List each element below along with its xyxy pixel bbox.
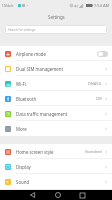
- button[interactable]: Display: [0, 159, 112, 174]
- button[interactable]: Search for settings: [5, 25, 107, 34]
- staticText: 7:54 AM: [94, 3, 110, 8]
- staticText: T-Mobile: [2, 4, 14, 8]
- button[interactable]: Home screen style: [0, 144, 112, 159]
- button[interactable]: Bluetooth: [0, 91, 112, 106]
- staticText: Bluetooth: [16, 96, 37, 102]
- button[interactable]: Home: [45, 190, 70, 200]
- button[interactable]: Airplane mode switch: [97, 51, 108, 57]
- staticText: Standard: [85, 149, 102, 154]
- button[interactable]: Sound: [0, 174, 112, 189]
- staticText: Wi-Fi: [16, 81, 26, 87]
- button[interactable]: Back: [20, 190, 45, 200]
- staticText: Off: [96, 96, 102, 101]
- staticText: Home screen style: [16, 149, 54, 155]
- staticText: More: [16, 126, 27, 132]
- staticText: Sound: [16, 179, 30, 185]
- button[interactable]: Dual SIM management: [0, 61, 112, 76]
- button[interactable]: Recent apps: [70, 190, 95, 200]
- button[interactable]: More: [0, 121, 112, 136]
- staticText: Dual SIM management: [16, 66, 63, 72]
- staticText: Airplane mode: [16, 51, 46, 57]
- staticText: Settings: [48, 14, 65, 20]
- button[interactable]: Wi-Fi: [0, 76, 112, 91]
- staticText: DNA5G: [88, 81, 102, 86]
- staticText: Search for settings: [8, 28, 36, 32]
- button[interactable]: Airplane mode: [0, 46, 112, 61]
- staticText: Display: [16, 164, 31, 170]
- staticText: Data traffic management: [16, 111, 68, 117]
- button[interactable]: Data traffic management: [0, 106, 112, 121]
